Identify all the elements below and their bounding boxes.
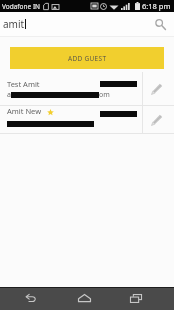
button[interactable]: Amit New — [0, 106, 142, 134]
staticText: a — [7, 90, 11, 100]
staticText: Vodafone IN — [2, 2, 41, 11]
staticText: amit — [3, 17, 25, 31]
staticText: Amit New — [7, 106, 42, 116]
staticText: ADD GUEST — [68, 54, 107, 63]
button[interactable]: Back — [13, 288, 47, 310]
staticText: 6:18 pm — [142, 1, 171, 11]
button[interactable]: Search — [152, 16, 168, 32]
button[interactable]: Home — [67, 288, 101, 310]
staticText: Test Amit — [7, 79, 40, 89]
button[interactable]: Recents — [119, 288, 153, 310]
button[interactable]: Test Amit — [0, 72, 142, 106]
staticText: om — [99, 90, 110, 100]
button[interactable]: ADD GUEST — [10, 47, 164, 69]
button[interactable]: Edit — [143, 106, 174, 134]
button[interactable]: Edit — [143, 72, 174, 106]
